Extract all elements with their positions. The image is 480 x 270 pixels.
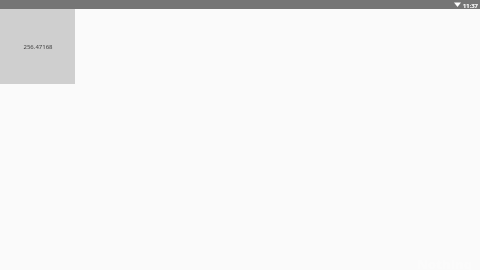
staticText: 11:37 [463,2,478,10]
staticText: 256.47168 [23,43,53,51]
other: Wi-Fi signal [454,2,461,7]
button[interactable]: 256.47168 [0,9,75,84]
